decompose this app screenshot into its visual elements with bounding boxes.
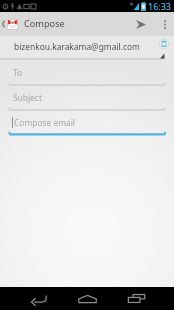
staticText: Subject [13,92,42,103]
button[interactable]: Subject [0,85,174,110]
button[interactable]: To [0,59,174,85]
staticText: Compose [24,17,65,30]
button[interactable]: Change picture [159,39,169,49]
button[interactable]: Send [126,12,156,36]
button[interactable]: More options [156,12,174,36]
staticText: Compose email [14,117,76,128]
button[interactable]: Compose [0,12,70,36]
staticText: 16:33 [148,0,172,12]
staticText: To [13,67,23,78]
button[interactable]: Recent apps [112,287,161,310]
staticText: bizenkou.karakama@gmail.com [14,41,140,52]
button[interactable]: Compose email [0,110,174,135]
button[interactable]: Back [14,287,63,310]
button[interactable]: Home [63,287,112,310]
